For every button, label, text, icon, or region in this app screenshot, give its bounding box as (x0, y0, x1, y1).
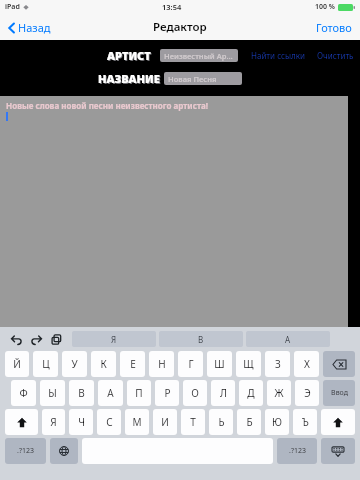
staticText: Ф (19, 386, 28, 400)
staticText: Я (111, 334, 117, 345)
button[interactable]: Р (155, 380, 179, 406)
staticText: Б (246, 415, 253, 429)
staticText: Ш (214, 357, 225, 371)
staticText: Э (304, 386, 311, 400)
staticText: Г (188, 357, 194, 371)
button[interactable]: В (159, 331, 243, 347)
button[interactable]: Т (181, 409, 205, 435)
button[interactable]: Ж (267, 380, 291, 406)
staticText: Ъ (302, 415, 309, 429)
staticText: Неизвестный Ар… (164, 51, 233, 61)
staticText: Редактор (153, 19, 207, 35)
staticText: Ввод (331, 388, 348, 398)
staticText: 100 % (315, 2, 335, 12)
button[interactable]: Shift (321, 409, 355, 435)
staticText: А (107, 386, 114, 400)
button[interactable]: Э (295, 380, 319, 406)
button[interactable]: Неизвестный Ар… (160, 49, 238, 62)
staticText: Ч (78, 415, 85, 429)
button[interactable]: Change keyboard language (50, 438, 78, 464)
staticText: П (135, 386, 143, 400)
staticText: АРТИСТ (108, 49, 152, 64)
button[interactable]: Новая Песня (164, 72, 242, 85)
staticText: Ц (42, 357, 50, 371)
button[interactable]: С (97, 409, 121, 435)
staticText: .?123 (289, 446, 306, 456)
button[interactable]: Л (211, 380, 235, 406)
staticText: Щ (243, 357, 254, 371)
staticText: Н (158, 357, 166, 371)
staticText: Ж (274, 386, 284, 400)
button[interactable]: У (62, 351, 87, 377)
button[interactable]: Я (72, 331, 156, 347)
staticText: С (106, 415, 113, 429)
staticText: .?123 (17, 446, 34, 456)
button[interactable]: П (127, 380, 151, 406)
button[interactable]: Я (42, 409, 65, 435)
button[interactable]: Ц (33, 351, 58, 377)
staticText: В (78, 386, 85, 400)
button[interactable]: О (183, 380, 207, 406)
button[interactable]: Готово (314, 17, 354, 38)
staticText: У (71, 357, 78, 371)
button[interactable]: Backspace (323, 351, 355, 377)
button[interactable]: Shift (5, 409, 38, 435)
button[interactable]: Г (178, 351, 203, 377)
staticText: Ь (218, 415, 225, 429)
staticText: 13:54 (162, 2, 182, 12)
button[interactable]: И (153, 409, 177, 435)
button[interactable]: А (98, 380, 123, 406)
staticText: Ы (48, 386, 57, 400)
staticText: Новые слова новой песни неизвестного арт… (6, 100, 208, 111)
button[interactable]: Ш (207, 351, 232, 377)
staticText: iPad (5, 2, 20, 12)
staticText: Я (50, 415, 57, 429)
button[interactable]: Ы (40, 380, 65, 406)
staticText: НАЗВАНИЕ (98, 71, 160, 86)
staticText: АРТИСТ (107, 48, 151, 63)
button[interactable]: Щ (236, 351, 261, 377)
button[interactable]: Х (294, 351, 319, 377)
staticText: В (198, 334, 204, 345)
button[interactable]: Е (120, 351, 145, 377)
button[interactable]: Undo (6, 329, 26, 349)
button[interactable]: К (91, 351, 116, 377)
button[interactable]: Д (239, 380, 263, 406)
button[interactable]: Ю (265, 409, 289, 435)
button[interactable]: Ф (11, 380, 36, 406)
button[interactable]: З (265, 351, 290, 377)
button[interactable]: Hide keyboard (321, 438, 355, 464)
button[interactable]: Ч (69, 409, 93, 435)
button[interactable]: А (246, 331, 330, 347)
button[interactable]: .?123 (5, 438, 46, 464)
staticText: Р (164, 386, 171, 400)
button[interactable]: Новые слова новой песни неизвестного арт… (0, 96, 348, 327)
staticText: Д (247, 386, 255, 400)
staticText: Новая Песня (168, 74, 217, 84)
button[interactable]: Ъ (293, 409, 317, 435)
button[interactable]: Redo (26, 329, 46, 349)
staticText: Л (220, 386, 227, 400)
staticText: НАЗВАНИЕ (99, 72, 161, 87)
staticText: Е (130, 357, 136, 371)
button[interactable]: Б (237, 409, 261, 435)
staticText: Назад (18, 20, 51, 35)
button[interactable]: Ввод (323, 380, 355, 406)
button[interactable]: Очистить (316, 48, 355, 63)
staticText: И (161, 415, 169, 429)
staticText: А (285, 334, 291, 345)
button[interactable]: Paste (46, 329, 66, 349)
staticText: М (132, 415, 142, 429)
button[interactable]: Й (5, 351, 29, 377)
button[interactable]: Найти ссылки (250, 48, 306, 63)
staticText: Й (13, 357, 21, 371)
staticText: К (100, 357, 107, 371)
button[interactable]: Ь (209, 409, 233, 435)
button[interactable]: .?123 (277, 438, 317, 464)
button[interactable]: В (69, 380, 94, 406)
button[interactable]: М (125, 409, 149, 435)
button[interactable]: Назад (6, 17, 53, 38)
staticText: З (275, 357, 281, 371)
button[interactable]: Н (149, 351, 174, 377)
